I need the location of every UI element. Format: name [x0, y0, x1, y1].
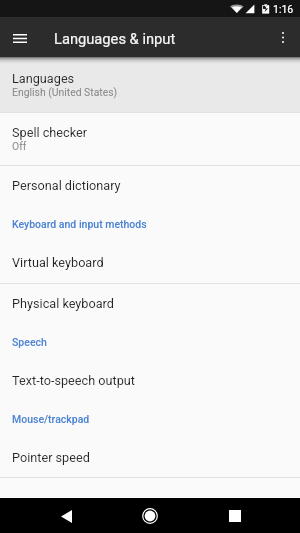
staticText: Personal dictionary [12, 178, 121, 193]
button[interactable]: More options [271, 25, 295, 49]
staticText: Languages [12, 71, 75, 86]
button[interactable]: Languages [0, 57, 300, 112]
button[interactable]: Recent apps [221, 502, 249, 530]
button[interactable]: Pointer speed [0, 440, 300, 477]
staticText: Pointer speed [12, 450, 90, 465]
button[interactable]: Open navigation drawer [8, 26, 32, 50]
staticText: 1:16 [273, 3, 294, 15]
button[interactable]: Virtual keyboard [0, 246, 300, 283]
staticText: Speech [12, 336, 47, 348]
staticText: Physical keyboard [12, 296, 114, 311]
button[interactable]: Text-to-speech output [0, 362, 300, 401]
staticText: English (United States) [12, 86, 118, 98]
staticText: Languages & input [54, 30, 176, 47]
staticText: Off [12, 140, 27, 152]
button[interactable]: Personal dictionary [0, 166, 300, 207]
button[interactable]: Spell checker [0, 113, 300, 165]
staticText: Spell checker [12, 125, 88, 140]
staticText: Keyboard and input methods [12, 218, 147, 230]
button[interactable]: Home [136, 502, 164, 530]
staticText: Virtual keyboard [12, 255, 104, 270]
staticText: Mouse/trackpad [12, 413, 90, 425]
button[interactable]: Physical keyboard [0, 284, 300, 323]
staticText: Text-to-speech output [12, 373, 135, 388]
button[interactable]: Back [52, 502, 80, 530]
